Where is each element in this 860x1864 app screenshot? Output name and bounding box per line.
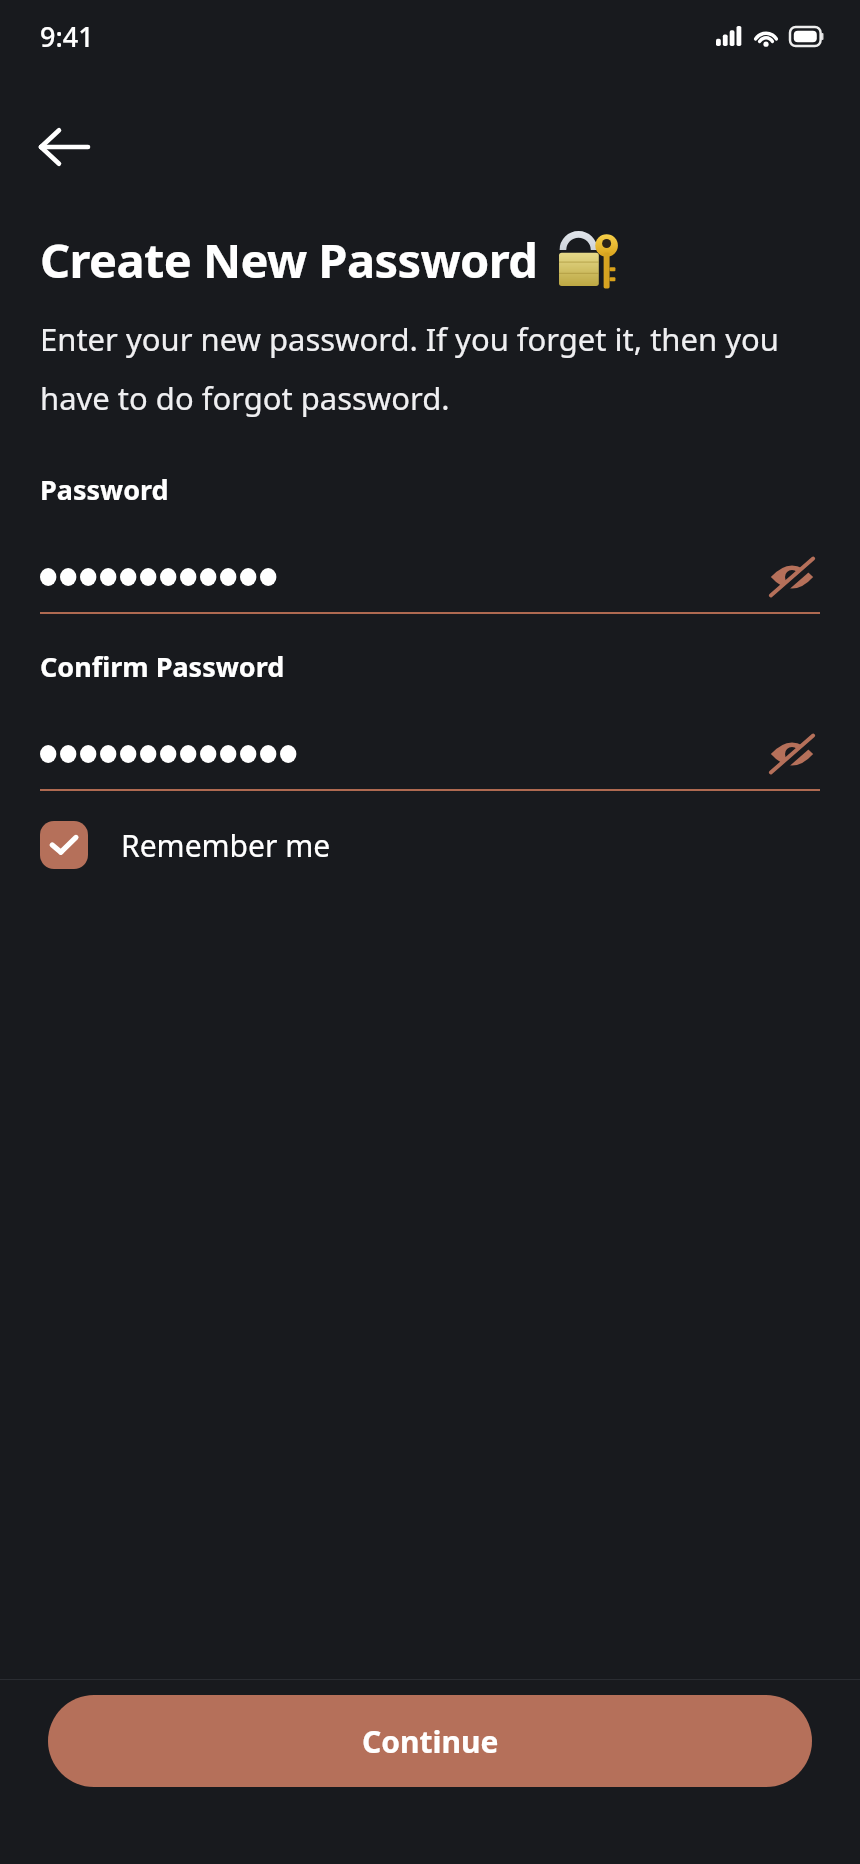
staticText: Password [40, 471, 169, 508]
button[interactable]: Back [26, 110, 100, 184]
button[interactable]: Continue [48, 1695, 812, 1787]
staticText: Enter your new password. If you forget i… [40, 318, 824, 419]
staticText: Continue [362, 1721, 499, 1762]
staticText: 9:41 [40, 18, 94, 55]
staticText: Confirm Password [40, 648, 285, 685]
staticText: Remember me [121, 825, 331, 866]
button[interactable]: Toggle password visibility [764, 726, 820, 782]
button[interactable]: Remember me [40, 821, 860, 869]
button[interactable]: Toggle password visibility [764, 549, 820, 605]
staticText: Create New Password [40, 228, 538, 292]
